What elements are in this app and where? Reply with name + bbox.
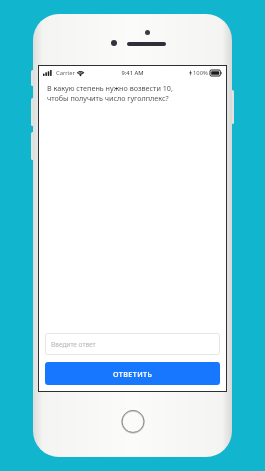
staticText: В какую степень нужно возвести 10, чтобы… [47,83,173,103]
button[interactable]: ОТВЕТИТЬ [45,362,220,385]
staticText: 100% [193,69,208,77]
staticText: 9:41 AM [121,69,144,77]
staticText: Введите ответ [51,340,96,349]
button[interactable]: Введите ответ [45,333,220,355]
staticText: ОТВЕТИТЬ [113,369,153,379]
staticText: Carrier [56,69,75,77]
